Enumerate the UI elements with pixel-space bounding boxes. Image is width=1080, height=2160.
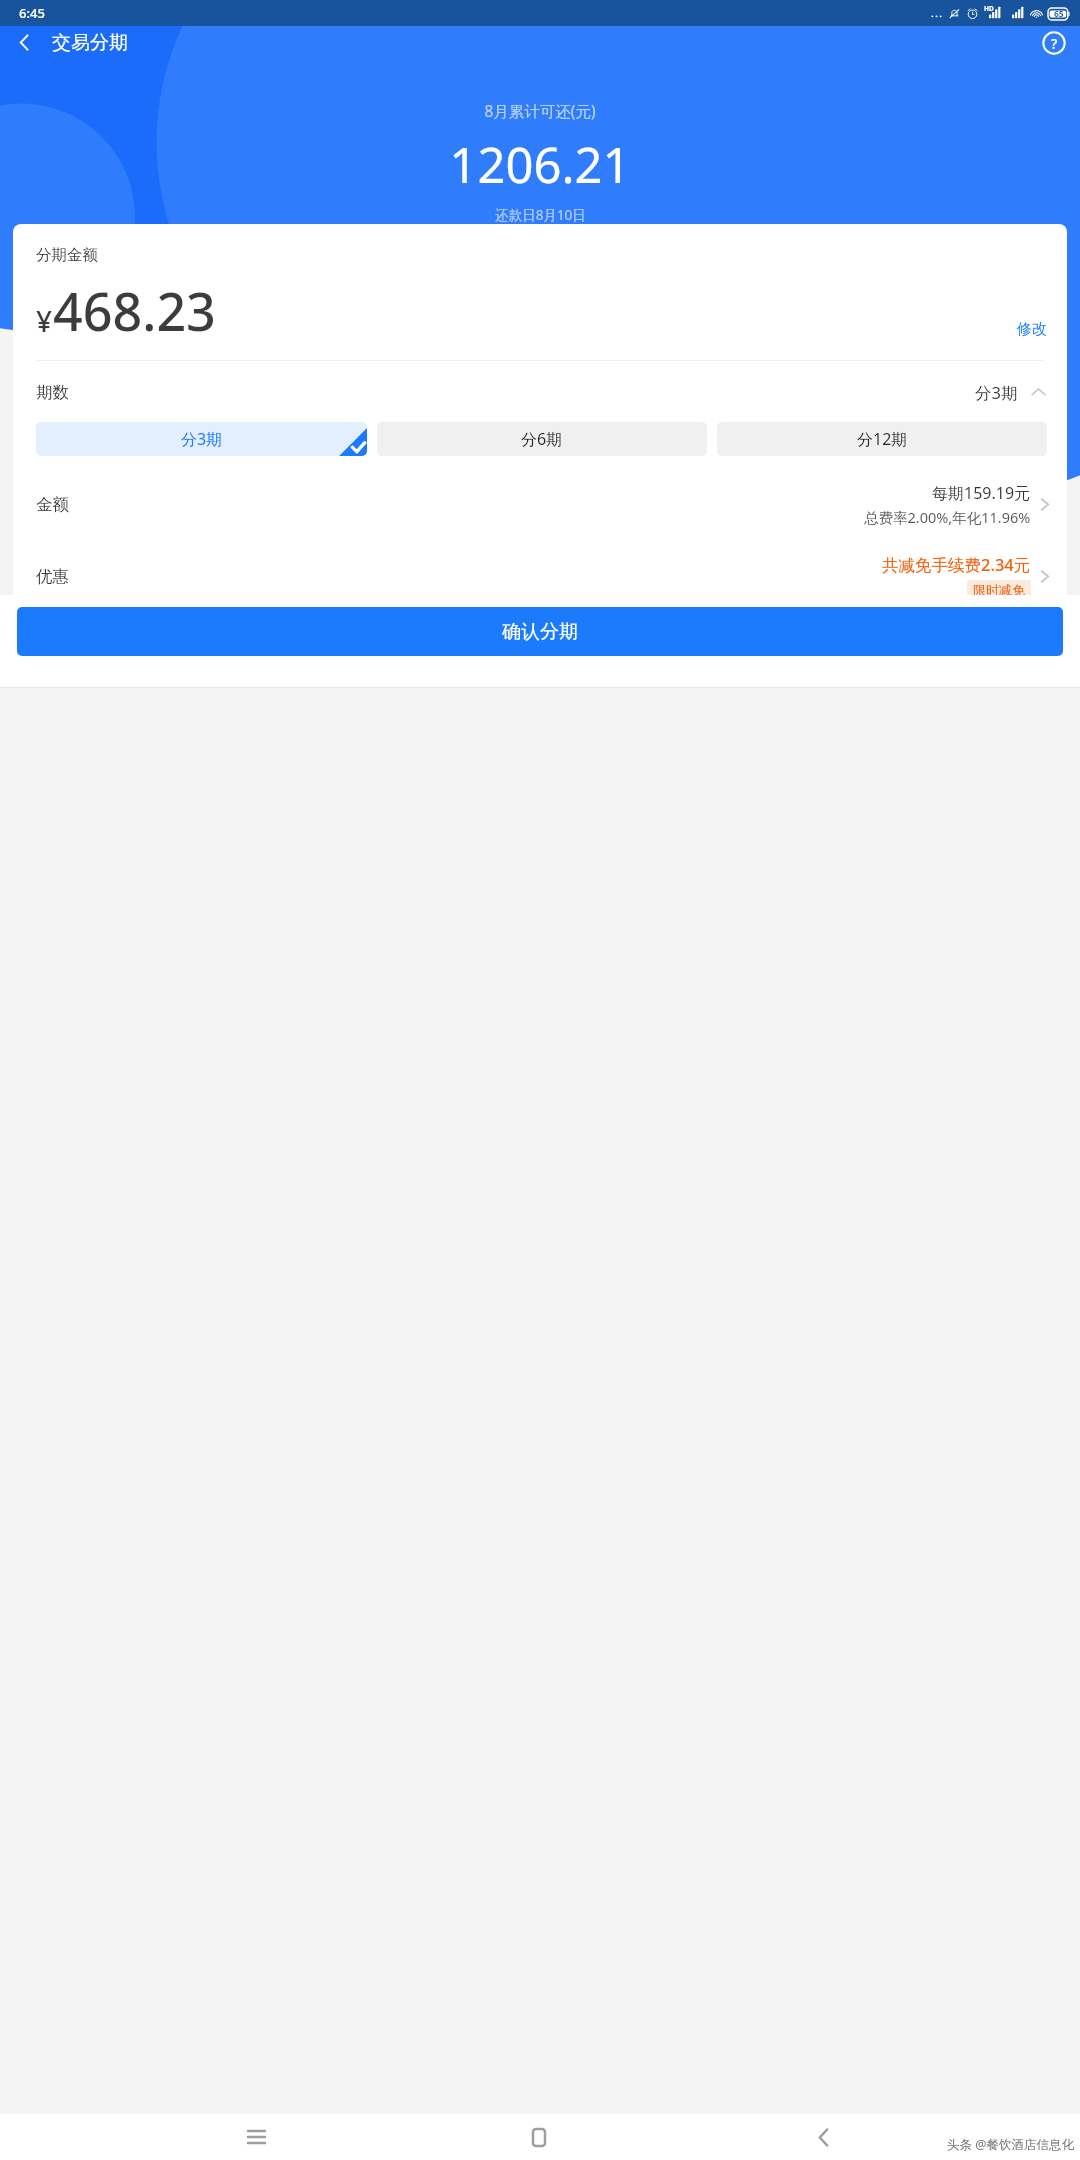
staticText: 确认分期: [502, 620, 578, 644]
staticText: 分期金额: [36, 245, 98, 265]
staticText: 总费率2.00%,年化11.96%: [864, 507, 1031, 527]
button[interactable]: 分12期: [717, 422, 1047, 456]
staticText: 修改: [1017, 320, 1047, 339]
staticText: 每期159.19元: [932, 482, 1031, 504]
staticText: ¥: [36, 302, 53, 340]
button[interactable]: Back: [796, 2114, 850, 2160]
staticText: ?: [1051, 34, 1058, 53]
staticText: 优惠: [36, 566, 69, 587]
button[interactable]: Help: [1028, 26, 1080, 59]
staticText: 头条 @餐饮酒店信息化: [947, 2136, 1074, 2153]
button[interactable]: 金额: [13, 456, 1067, 527]
button[interactable]: 优惠: [13, 527, 1067, 626]
button[interactable]: 分6期: [377, 422, 707, 456]
staticText: 6:45: [19, 4, 45, 22]
staticText: 65: [1054, 8, 1064, 20]
staticText: 限时减免: [973, 582, 1025, 598]
staticText: 分6期: [521, 428, 563, 450]
staticText: 分12期: [857, 428, 908, 450]
button[interactable]: 分3期: [36, 422, 367, 456]
button[interactable]: Recents: [229, 2114, 283, 2160]
staticText: 468.23: [53, 275, 216, 346]
button[interactable]: 修改: [1017, 320, 1047, 346]
button[interactable]: Home: [512, 2114, 566, 2160]
button[interactable]: 期数: [13, 361, 1067, 408]
staticText: 交易分期: [52, 31, 128, 55]
staticText: 分3期: [181, 428, 223, 450]
staticText: 分3期: [975, 381, 1018, 404]
staticText: 8月累计可还(元): [484, 100, 596, 121]
button[interactable]: Back: [0, 26, 48, 59]
button[interactable]: 确认分期: [17, 607, 1063, 656]
staticText: 1206.21: [449, 131, 631, 198]
staticText: 共减免手续费2.34元: [882, 553, 1031, 576]
staticText: 期数: [36, 382, 69, 403]
staticText: 还款日8月10日: [495, 206, 586, 224]
staticText: HD: [984, 4, 994, 13]
staticText: 金额: [36, 494, 69, 515]
